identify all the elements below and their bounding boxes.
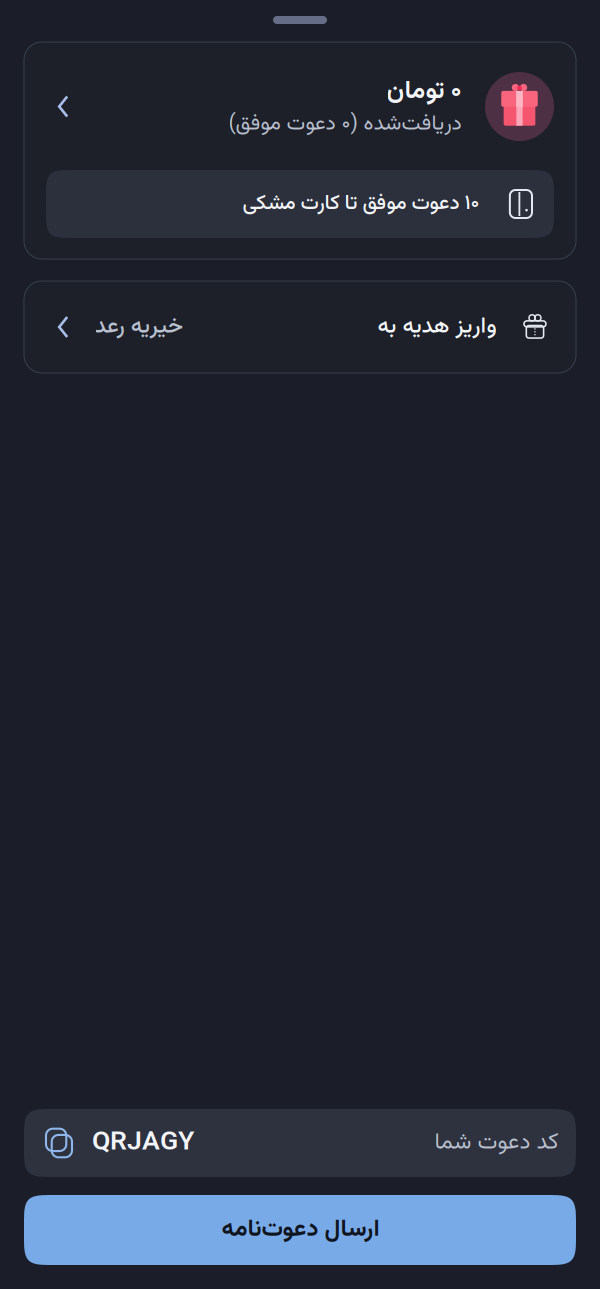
- staticText: ۰ تومان: [386, 72, 461, 112]
- staticText: دریافت‌شده (۰ دعوت موفق): [228, 108, 461, 141]
- staticText: ارسال دعوت‌نامه: [221, 1211, 379, 1249]
- button[interactable]: خیریه رعد: [24, 281, 576, 373]
- button[interactable]: ۰ تومان: [24, 42, 576, 259]
- staticText: واریز هدیه به: [377, 309, 496, 345]
- staticText: ۱۰ دعوت موفق تا کارت مشکی: [242, 188, 479, 220]
- staticText: خیریه رعد: [94, 309, 182, 345]
- staticText: QRJAGY: [92, 1122, 194, 1164]
- staticText: کد دعوت شما: [434, 1125, 558, 1161]
- button[interactable]: ارسال دعوت‌نامه: [24, 1195, 576, 1265]
- button[interactable]: QRJAGY: [24, 1109, 576, 1177]
